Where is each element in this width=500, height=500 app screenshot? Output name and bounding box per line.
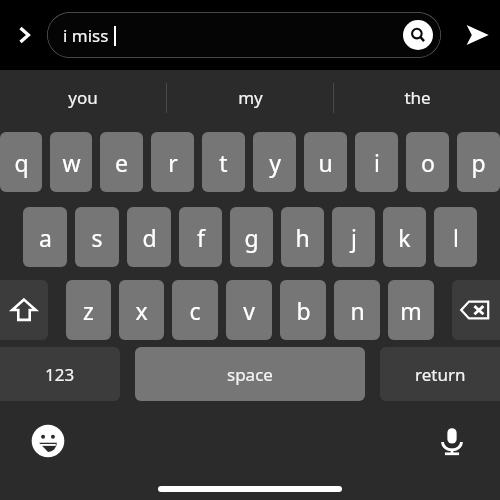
button[interactable]: s [75, 207, 119, 267]
button[interactable]: i miss [47, 12, 441, 58]
staticText: z [83, 295, 94, 326]
button[interactable]: j [332, 207, 375, 267]
button[interactable]: m [388, 280, 434, 340]
button[interactable]: w [50, 132, 92, 192]
button[interactable]: b [280, 280, 326, 340]
staticText: you [68, 86, 98, 109]
staticText: the [404, 86, 431, 109]
button[interactable]: r [151, 132, 194, 192]
button[interactable]: Shift [0, 280, 48, 340]
staticText: j [351, 222, 357, 253]
staticText: o [421, 147, 435, 178]
staticText: d [142, 222, 157, 253]
button[interactable]: 123 [0, 347, 120, 401]
button[interactable]: space [135, 347, 365, 401]
button[interactable]: o [406, 132, 449, 192]
staticText: n [350, 295, 365, 326]
staticText: b [296, 295, 311, 326]
button[interactable]: a [23, 207, 67, 267]
button[interactable]: e [100, 132, 143, 192]
button[interactable]: f [179, 207, 222, 267]
button[interactable]: h [281, 207, 324, 267]
button[interactable]: p [457, 132, 500, 192]
staticText: r [168, 147, 178, 178]
button[interactable]: v [226, 280, 272, 340]
staticText: g [244, 222, 259, 253]
staticText: w [62, 147, 81, 178]
button[interactable]: i [355, 132, 398, 192]
staticText: i miss [63, 24, 109, 47]
button[interactable]: x [119, 280, 164, 340]
staticText: my [238, 86, 263, 109]
button[interactable]: c [172, 280, 218, 340]
button[interactable]: k [383, 207, 426, 267]
button[interactable]: q [0, 132, 42, 192]
staticText: m [400, 295, 422, 326]
button[interactable]: l [434, 207, 477, 267]
button[interactable]: return [380, 347, 500, 401]
staticText: a [39, 222, 52, 253]
button[interactable]: d [127, 207, 171, 267]
staticText: f [197, 222, 205, 253]
button[interactable]: Search [403, 20, 433, 50]
staticText: h [295, 222, 310, 253]
button[interactable]: the [334, 70, 500, 125]
button[interactable]: t [202, 132, 245, 192]
staticText: t [219, 147, 228, 178]
button[interactable]: Emoji [24, 417, 72, 465]
button[interactable]: y [253, 132, 296, 192]
button[interactable]: Send [454, 12, 500, 58]
staticText: q [14, 147, 29, 178]
button[interactable]: z [66, 280, 111, 340]
button[interactable]: Voice input [428, 417, 476, 465]
staticText: space [227, 363, 273, 386]
button[interactable]: my [167, 70, 333, 125]
staticText: x [135, 295, 148, 326]
button[interactable]: Backspace [452, 280, 500, 340]
staticText: l [453, 222, 459, 253]
staticText: p [471, 147, 486, 178]
staticText: c [189, 295, 201, 326]
button[interactable]: u [304, 132, 347, 192]
staticText: u [318, 147, 333, 178]
staticText: v [243, 295, 255, 326]
staticText: s [91, 222, 103, 253]
staticText: y [269, 147, 281, 178]
staticText: return [415, 363, 466, 386]
button[interactable]: n [334, 280, 380, 340]
staticText: k [398, 222, 411, 253]
staticText: i [374, 147, 380, 178]
button[interactable]: Expand [2, 13, 46, 57]
button[interactable]: g [230, 207, 273, 267]
staticText: 123 [45, 363, 75, 386]
staticText: e [115, 147, 128, 178]
button[interactable]: you [0, 70, 166, 125]
